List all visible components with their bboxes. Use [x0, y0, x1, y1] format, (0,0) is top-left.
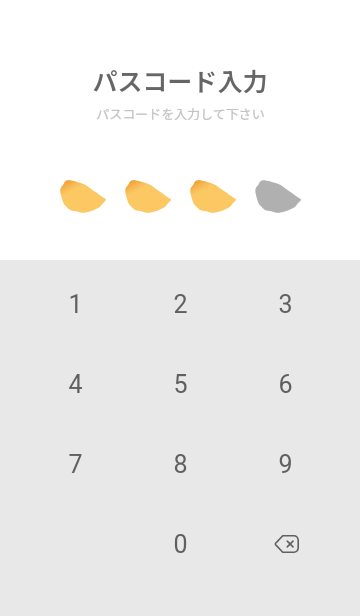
button[interactable]: 4 [23, 344, 128, 424]
staticText: 7 [68, 450, 83, 479]
button[interactable]: 8 [128, 424, 233, 504]
staticText: パスコードを入力して下さい [96, 104, 265, 123]
button[interactable]: 6 [233, 344, 338, 424]
staticText: 4 [68, 370, 83, 399]
staticText: 2 [173, 290, 188, 319]
other: Backspace [266, 524, 306, 564]
staticText: 6 [278, 370, 293, 399]
button[interactable]: 2 [128, 264, 233, 344]
button[interactable]: 9 [233, 424, 338, 504]
staticText: 0 [173, 530, 188, 559]
staticText: 3 [278, 290, 293, 319]
button[interactable]: 3 [233, 264, 338, 344]
staticText: 8 [173, 450, 188, 479]
staticText: 9 [278, 450, 293, 479]
staticText: 1 [68, 290, 83, 319]
button[interactable]: 5 [128, 344, 233, 424]
staticText: パスコード入力 [92, 62, 268, 98]
button[interactable]: 0 [128, 504, 233, 584]
button[interactable]: Backspace [233, 504, 338, 584]
button[interactable]: 7 [23, 424, 128, 504]
staticText: 5 [173, 370, 188, 399]
button[interactable]: 1 [23, 264, 128, 344]
